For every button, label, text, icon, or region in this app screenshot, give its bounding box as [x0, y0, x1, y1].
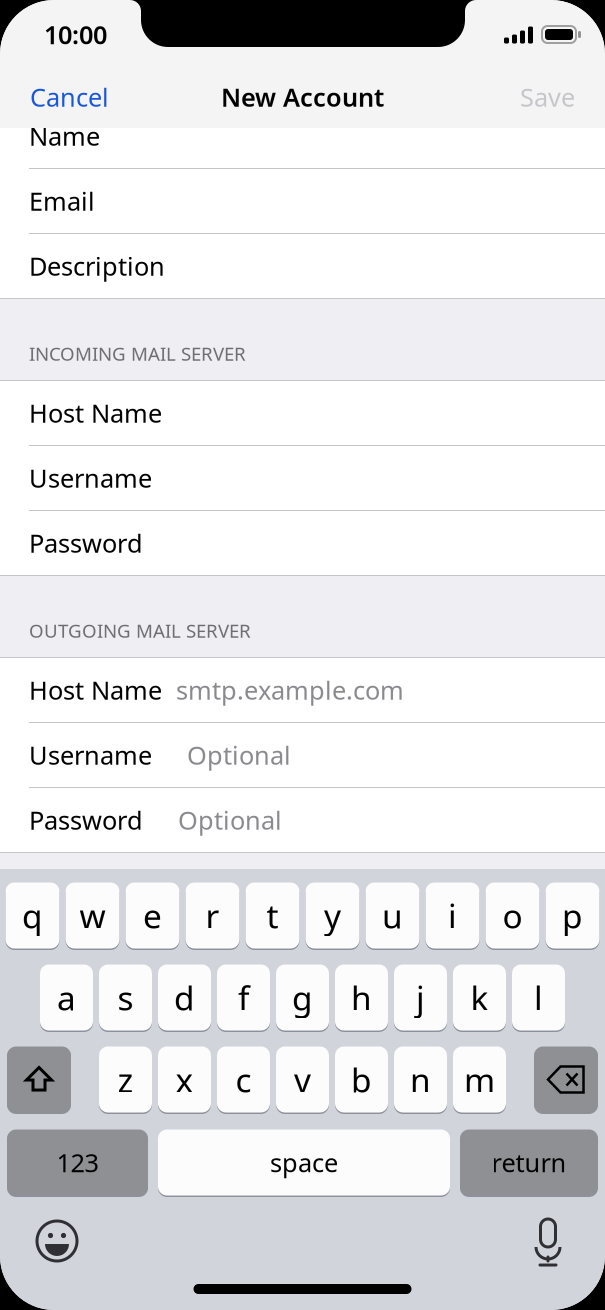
- staticText: b: [351, 1057, 372, 1102]
- staticText: OUTGOING MAIL SERVER: [29, 618, 251, 643]
- staticText: g: [292, 975, 313, 1020]
- staticText: x: [175, 1057, 193, 1102]
- staticText: New Account: [221, 80, 384, 114]
- staticText: Email: [29, 184, 95, 218]
- button[interactable]: return: [460, 1128, 598, 1197]
- staticText: Optional: [187, 738, 291, 772]
- button[interactable]: w: [65, 881, 119, 950]
- staticText: Optional: [178, 803, 282, 837]
- staticText: Host Name: [29, 673, 162, 707]
- button[interactable]: Password: [0, 788, 605, 852]
- button[interactable]: t: [245, 881, 299, 950]
- staticText: r: [205, 893, 219, 938]
- staticText: Cancel: [30, 80, 109, 114]
- staticText: f: [238, 975, 249, 1020]
- staticText: p: [562, 893, 583, 938]
- staticText: e: [143, 893, 162, 938]
- staticText: Save: [520, 80, 575, 114]
- staticText: Password: [29, 526, 143, 560]
- button[interactable]: s: [99, 963, 152, 1032]
- staticText: u: [382, 893, 403, 938]
- button[interactable]: Shift: [7, 1045, 71, 1114]
- staticText: q: [22, 893, 43, 938]
- button[interactable]: Username: [0, 723, 605, 787]
- button[interactable]: Save: [490, 66, 605, 128]
- button[interactable]: Host Name: [0, 658, 605, 722]
- button[interactable]: h: [335, 963, 388, 1032]
- button[interactable]: f: [217, 963, 270, 1032]
- staticText: y: [324, 893, 341, 938]
- staticText: Name: [29, 119, 100, 153]
- staticText: a: [57, 975, 76, 1020]
- button[interactable]: g: [276, 963, 329, 1032]
- staticText: space: [270, 1146, 338, 1179]
- button[interactable]: a: [40, 963, 93, 1032]
- staticText: n: [410, 1057, 431, 1102]
- button[interactable]: b: [335, 1045, 388, 1114]
- staticText: v: [294, 1057, 311, 1102]
- button[interactable]: v: [276, 1045, 329, 1114]
- button[interactable]: d: [158, 963, 211, 1032]
- button[interactable]: u: [365, 881, 419, 950]
- button[interactable]: m: [453, 1045, 506, 1114]
- staticText: Description: [29, 249, 165, 283]
- button[interactable]: i: [425, 881, 479, 950]
- staticText: j: [416, 975, 425, 1020]
- staticText: k: [470, 975, 488, 1020]
- button[interactable]: z: [99, 1045, 152, 1114]
- button[interactable]: l: [512, 963, 565, 1032]
- button[interactable]: n: [394, 1045, 447, 1114]
- staticText: Username: [29, 738, 152, 772]
- button[interactable]: Cancel: [0, 66, 139, 128]
- staticText: INCOMING MAIL SERVER: [29, 341, 246, 366]
- button[interactable]: Emoji keyboard: [32, 1216, 82, 1266]
- button[interactable]: k: [453, 963, 506, 1032]
- button[interactable]: Password: [0, 511, 605, 575]
- staticText: Host Name: [29, 396, 162, 430]
- staticText: Password: [29, 803, 143, 837]
- button[interactable]: Username: [0, 446, 605, 510]
- button[interactable]: 123: [7, 1128, 148, 1197]
- button[interactable]: r: [185, 881, 239, 950]
- staticText: c: [235, 1057, 251, 1102]
- staticText: d: [174, 975, 195, 1020]
- staticText: w: [79, 893, 105, 938]
- staticText: z: [117, 1057, 133, 1102]
- button[interactable]: space: [158, 1128, 450, 1197]
- button[interactable]: c: [217, 1045, 270, 1114]
- staticText: o: [502, 893, 522, 938]
- button[interactable]: q: [5, 881, 59, 950]
- staticText: smtp.example.com: [176, 673, 404, 707]
- staticText: Username: [29, 461, 152, 495]
- button[interactable]: Name: [0, 104, 605, 168]
- staticText: t: [266, 893, 278, 938]
- staticText: h: [351, 975, 372, 1020]
- button[interactable]: Email: [0, 169, 605, 233]
- button[interactable]: Dictation: [523, 1216, 573, 1266]
- staticText: 123: [56, 1146, 98, 1179]
- button[interactable]: j: [394, 963, 447, 1032]
- staticText: l: [534, 975, 543, 1020]
- button[interactable]: p: [545, 881, 599, 950]
- staticText: 10:00: [44, 18, 107, 51]
- button[interactable]: x: [158, 1045, 211, 1114]
- button[interactable]: o: [485, 881, 539, 950]
- button[interactable]: y: [305, 881, 359, 950]
- staticText: return: [491, 1146, 566, 1179]
- button[interactable]: Description: [0, 234, 605, 298]
- button[interactable]: e: [125, 881, 179, 950]
- button[interactable]: Host Name: [0, 381, 605, 445]
- staticText: m: [464, 1057, 495, 1102]
- staticText: i: [448, 893, 457, 938]
- staticText: s: [117, 975, 133, 1020]
- button[interactable]: Delete: [534, 1045, 598, 1114]
